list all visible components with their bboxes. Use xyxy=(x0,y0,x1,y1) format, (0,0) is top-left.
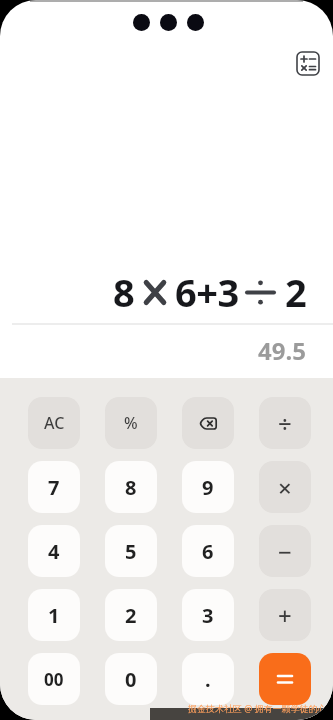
button[interactable] xyxy=(296,51,320,76)
button[interactable]: 8 xyxy=(105,461,157,513)
staticText: 49.5 xyxy=(258,334,306,367)
staticText: 7 xyxy=(48,474,60,501)
staticText: 8 xyxy=(113,266,135,318)
staticText: AC xyxy=(44,412,65,434)
button[interactable]: 5 xyxy=(105,525,157,577)
staticText: 1 xyxy=(48,602,60,629)
button[interactable]: 1 xyxy=(28,589,80,641)
button[interactable]: 2 xyxy=(105,589,157,641)
staticText: 掘金技术社区 @ 拥有一颗学徒的心 xyxy=(188,702,327,714)
button[interactable]: 7 xyxy=(28,461,80,513)
button[interactable]: 3 xyxy=(182,589,234,641)
staticText: ÷ xyxy=(278,407,292,440)
staticText: 6+3 xyxy=(175,266,239,318)
button[interactable]: % xyxy=(105,397,157,449)
staticText: 00 xyxy=(44,668,64,691)
staticText: 6 xyxy=(202,538,214,565)
staticText: 5 xyxy=(125,538,137,565)
staticText: 0 xyxy=(125,666,137,693)
staticText: 2 xyxy=(285,266,307,318)
staticText: − xyxy=(278,535,292,568)
staticText: 8 xyxy=(125,474,137,501)
button[interactable]: 00 xyxy=(28,653,80,705)
button[interactable]: × xyxy=(259,461,311,513)
staticText: 3 xyxy=(202,602,214,629)
staticText: 4 xyxy=(48,538,60,565)
button[interactable]: + xyxy=(259,589,311,641)
button[interactable]: − xyxy=(259,525,311,577)
button[interactable]: ÷ xyxy=(259,397,311,449)
button[interactable] xyxy=(259,653,311,705)
staticText: . xyxy=(205,666,211,693)
staticText: % xyxy=(124,412,138,434)
staticText: + xyxy=(278,599,292,632)
button[interactable]: 6 xyxy=(182,525,234,577)
staticText: 9 xyxy=(202,474,214,501)
staticText: × xyxy=(278,471,292,504)
button[interactable] xyxy=(182,397,234,449)
button[interactable]: . xyxy=(182,653,234,705)
staticText: 2 xyxy=(125,602,137,629)
button[interactable]: 4 xyxy=(28,525,80,577)
button[interactable]: 0 xyxy=(105,653,157,705)
button[interactable]: AC xyxy=(28,397,80,449)
button[interactable]: 9 xyxy=(182,461,234,513)
